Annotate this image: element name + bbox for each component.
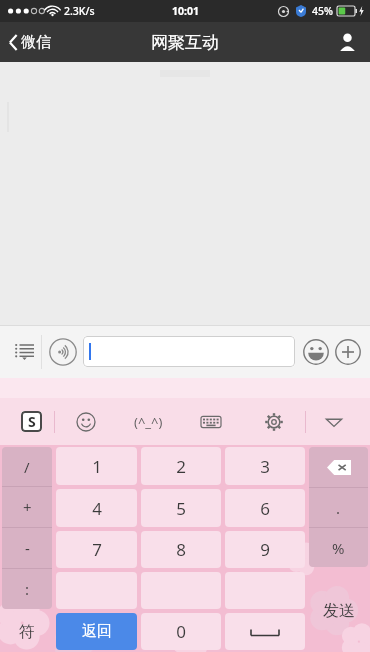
button[interactable]: Settings <box>242 398 305 445</box>
button[interactable]: . <box>309 488 368 527</box>
button[interactable]: Add attachment <box>333 337 363 367</box>
staticText: (^_^) <box>134 413 163 431</box>
staticText: 1 <box>92 455 102 478</box>
button[interactable]: 6 <box>225 489 305 527</box>
staticText: 45% <box>312 4 333 18</box>
button[interactable]: + <box>2 487 52 527</box>
button[interactable]: Keyboard layout <box>179 398 242 445</box>
button[interactable]: 5 <box>141 489 221 527</box>
staticText: 网聚互动 <box>151 32 219 53</box>
button[interactable]: / <box>2 447 52 486</box>
button[interactable]: 1 <box>56 447 137 485</box>
staticText: - <box>25 538 30 558</box>
button[interactable]: Backspace <box>309 447 368 487</box>
staticText: 4 <box>92 497 102 520</box>
button[interactable]: Emoji <box>301 337 331 367</box>
staticText: + <box>23 497 32 517</box>
staticText: : <box>25 579 30 599</box>
staticText: / <box>24 457 30 477</box>
staticText: . <box>336 498 341 518</box>
staticText: 8 <box>176 538 186 561</box>
staticText: 符 <box>19 622 35 642</box>
button[interactable]: 9 <box>225 531 305 568</box>
button[interactable]: 符 <box>0 611 54 652</box>
staticText: 3 <box>260 455 270 478</box>
button[interactable]: Hide keyboard <box>306 398 362 445</box>
button[interactable]: 2 <box>141 447 221 485</box>
staticText: % <box>332 538 345 558</box>
button[interactable]: 发送 <box>307 569 370 652</box>
button[interactable]: % <box>309 528 368 567</box>
button[interactable]: 0 <box>141 613 221 650</box>
staticText: 发送 <box>323 601 355 621</box>
staticText: 0 <box>176 620 186 643</box>
button[interactable]: 返回 <box>56 613 137 650</box>
button[interactable]: Voice input <box>48 337 78 367</box>
button[interactable]: 3 <box>225 447 305 485</box>
button[interactable]: 4 <box>56 489 137 527</box>
button[interactable]: 8 <box>141 531 221 568</box>
button[interactable]: Emoji panel <box>55 398 117 445</box>
button[interactable]: (^_^) <box>117 398 179 445</box>
button[interactable] <box>83 336 295 367</box>
button[interactable]: Space <box>225 613 305 650</box>
staticText: 7 <box>92 538 102 561</box>
staticText: 2 <box>176 455 186 478</box>
staticText: 6 <box>260 497 270 520</box>
button[interactable]: : <box>2 569 52 609</box>
button[interactable]: Contact info <box>325 25 370 59</box>
button[interactable]: - <box>2 528 52 568</box>
button[interactable]: More options <box>7 335 41 369</box>
staticText: 5 <box>176 497 186 520</box>
staticText: S <box>28 412 36 431</box>
button[interactable]: 微信 <box>0 27 61 58</box>
button[interactable]: 7 <box>56 531 137 568</box>
staticText: 2.3K/s <box>64 4 95 18</box>
staticText: 返回 <box>82 622 112 641</box>
button[interactable]: Sogou input <box>8 398 54 445</box>
staticText: 微信 <box>21 33 51 52</box>
staticText: 9 <box>260 538 270 561</box>
staticText: 10:01 <box>172 4 199 18</box>
